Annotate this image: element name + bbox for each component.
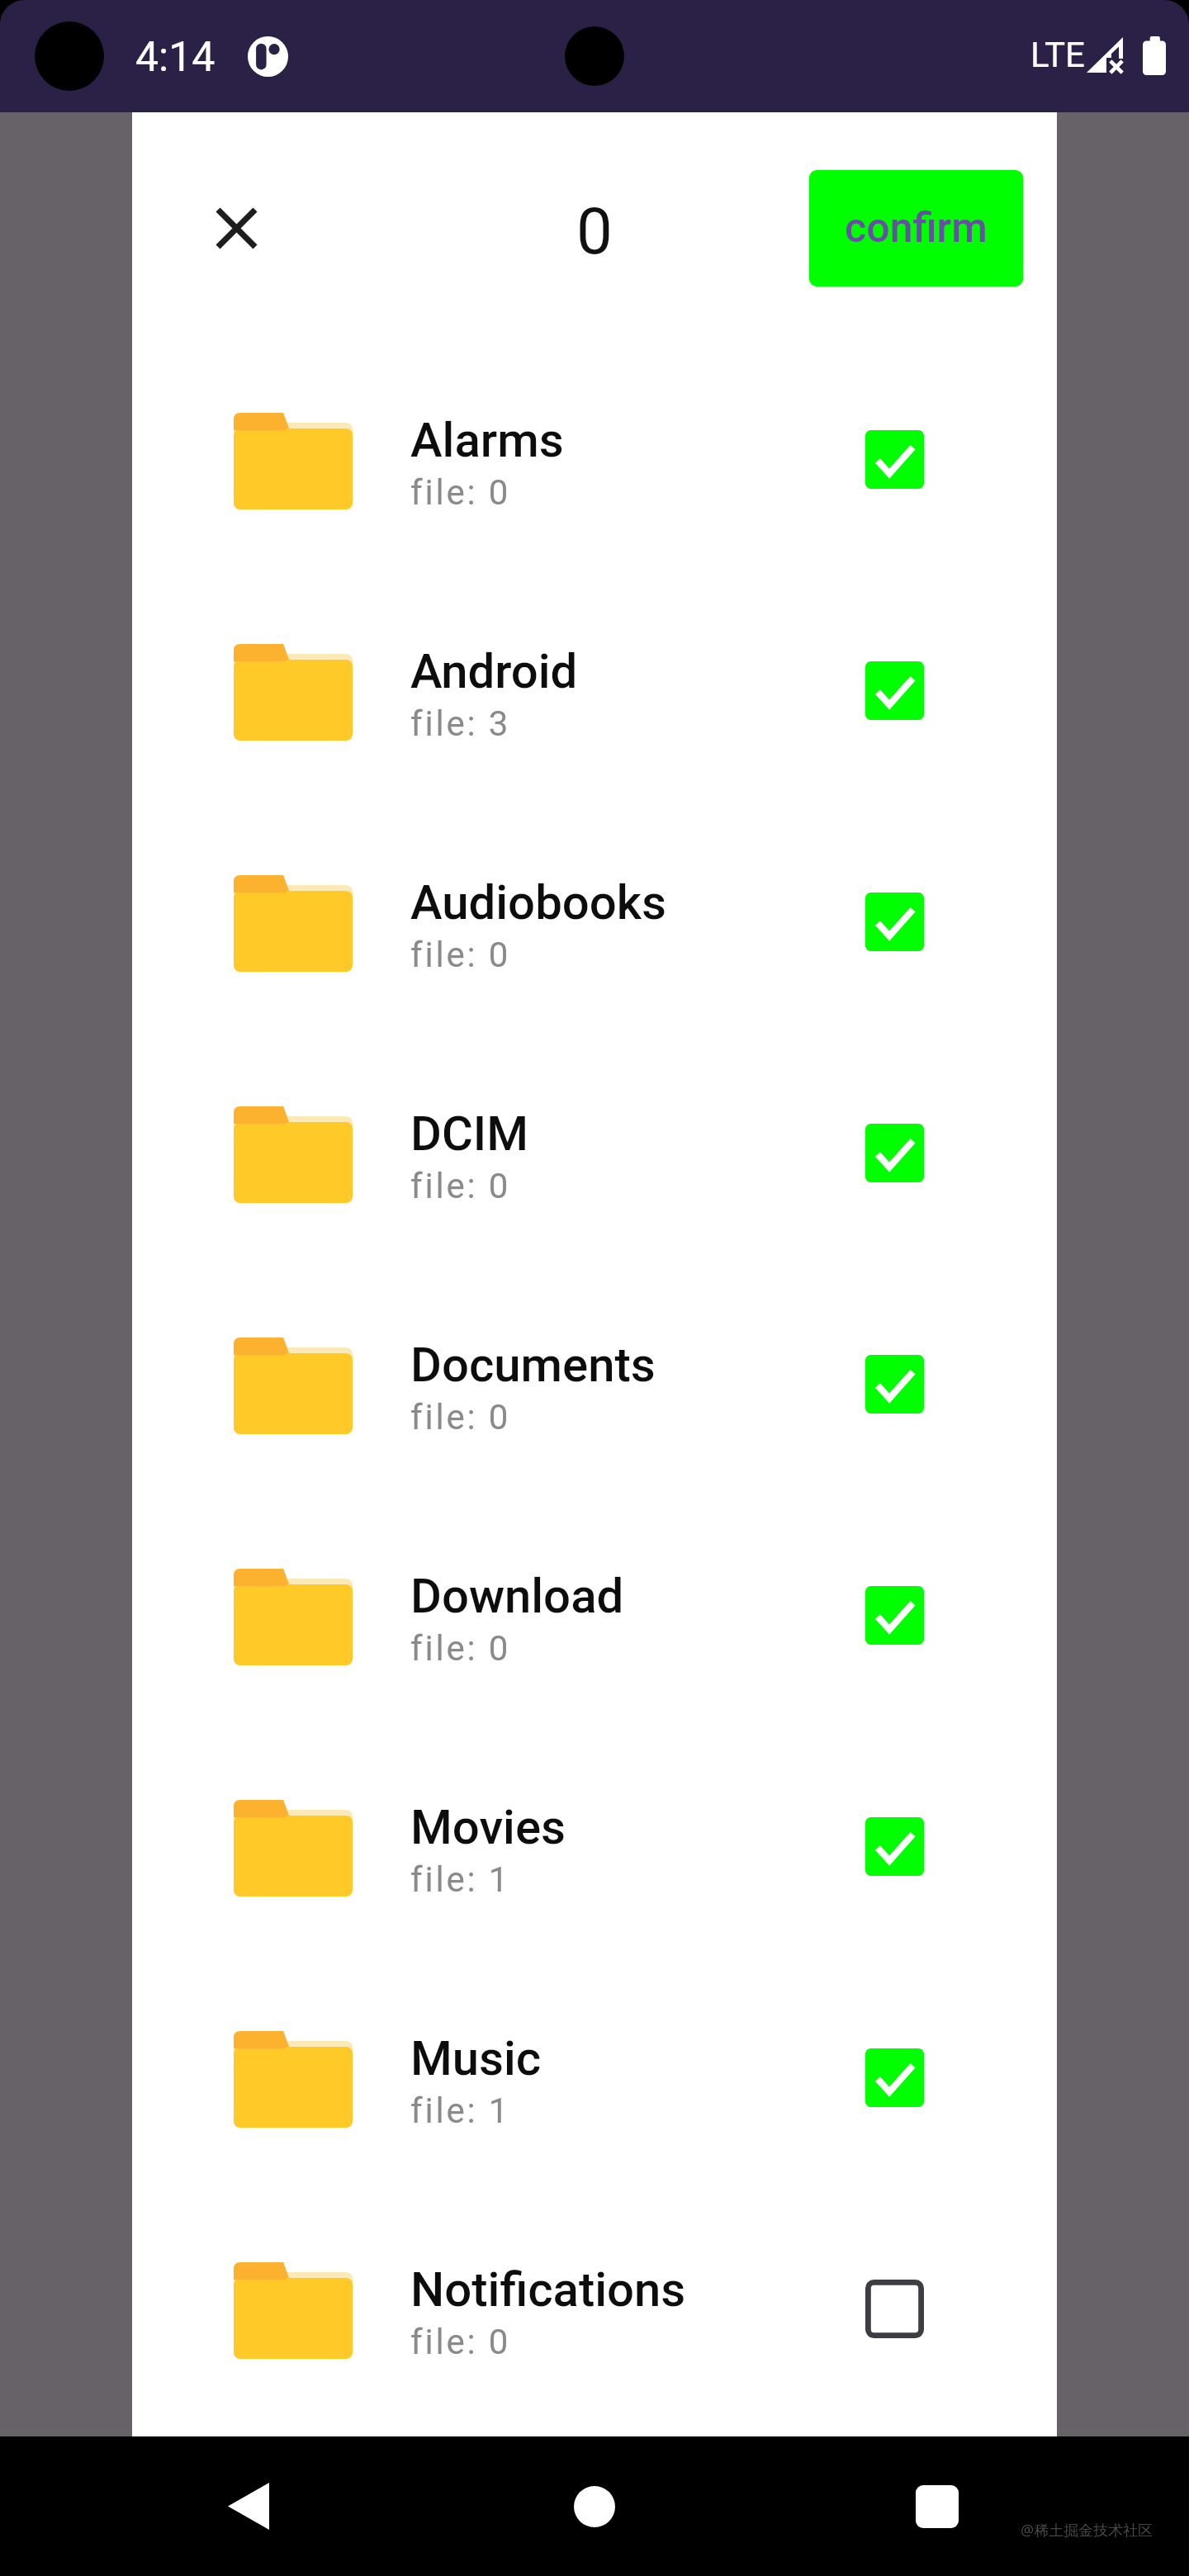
- staticText: Music: [410, 2030, 542, 2086]
- staticText: Download: [410, 1568, 624, 1624]
- button[interactable]: Selected: [865, 893, 924, 951]
- staticText: file: 0: [410, 472, 511, 513]
- button[interactable]: Not selected: [865, 2280, 924, 2338]
- button[interactable]: confirm: [809, 170, 1023, 286]
- button[interactable]: Close: [162, 154, 310, 302]
- staticText: file: 0: [410, 2322, 511, 2362]
- staticText: Notifications: [410, 2261, 686, 2318]
- button[interactable]: Selected: [865, 661, 924, 720]
- button[interactable]: Selected: [865, 430, 924, 489]
- staticText: file: 0: [410, 1628, 511, 1669]
- staticText: DCIM: [410, 1106, 528, 1162]
- staticText: Documents: [410, 1337, 656, 1393]
- button[interactable]: Selected: [865, 1355, 924, 1413]
- button[interactable]: Music: [132, 1973, 1057, 2204]
- button[interactable]: Selected: [865, 1586, 924, 1645]
- staticText: Movies: [410, 1799, 566, 1855]
- staticText: 4:14: [135, 33, 216, 82]
- staticText: LTE: [1030, 35, 1085, 75]
- staticText: file: 1: [410, 1859, 511, 1900]
- staticText: file: 3: [410, 703, 511, 744]
- staticText: file: 1: [410, 2091, 511, 2131]
- button[interactable]: Android: [132, 586, 1057, 817]
- button[interactable]: Selected: [865, 2048, 924, 2107]
- button[interactable]: Movies: [132, 1742, 1057, 1973]
- staticText: 0: [132, 194, 1057, 269]
- staticText: file: 0: [410, 1397, 511, 1437]
- button[interactable]: Notifications: [132, 2204, 1057, 2436]
- button[interactable]: DCIM: [132, 1049, 1057, 1280]
- button[interactable]: Back: [199, 2436, 298, 2576]
- button[interactable]: Download: [132, 1511, 1057, 1742]
- staticText: @稀土掘金技术社区: [1021, 2520, 1153, 2540]
- button[interactable]: Home: [545, 2436, 644, 2576]
- staticText: confirm: [845, 204, 988, 253]
- button[interactable]: Documents: [132, 1280, 1057, 1511]
- staticText: Android: [410, 643, 578, 699]
- button[interactable]: Audiobooks: [132, 817, 1057, 1049]
- button[interactable]: Selected: [865, 1817, 924, 1876]
- staticText: file: 0: [410, 935, 511, 975]
- staticText: file: 0: [410, 1166, 511, 1206]
- staticText: Alarms: [410, 412, 564, 468]
- button[interactable]: Selected: [865, 1124, 924, 1182]
- button[interactable]: Recent apps: [888, 2436, 987, 2576]
- button[interactable]: Alarms: [132, 355, 1057, 586]
- staticText: Audiobooks: [410, 874, 667, 930]
